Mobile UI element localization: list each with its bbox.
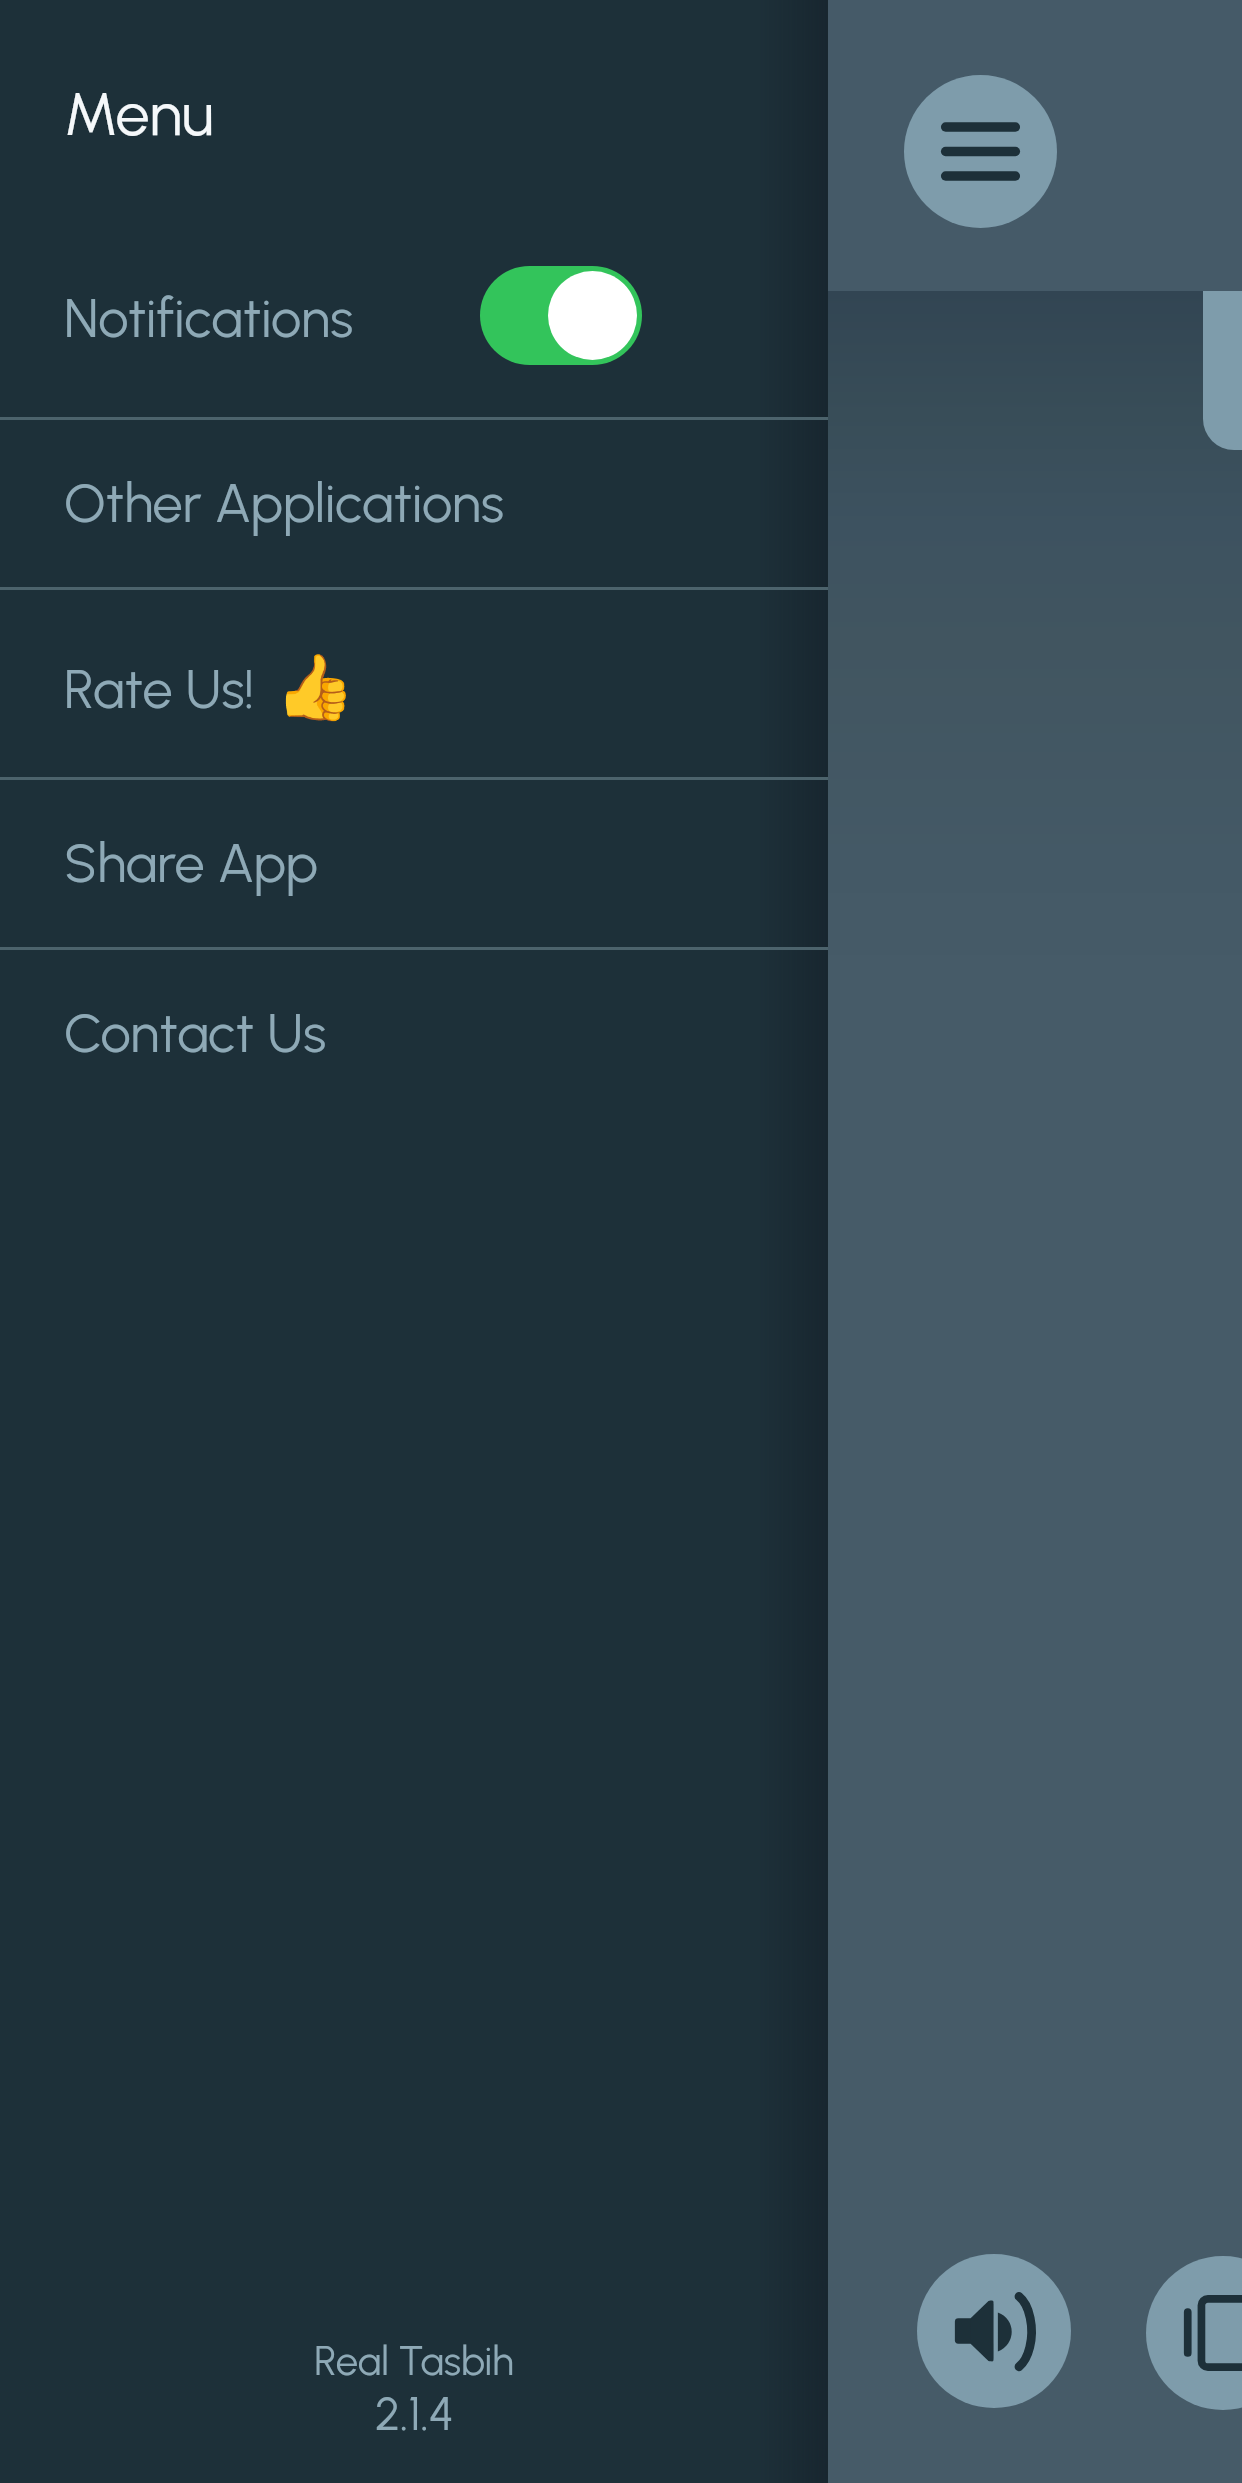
- button[interactable]: Other Applications: [0, 418, 828, 588]
- button[interactable]: Sound: [917, 2254, 1071, 2408]
- staticText: Rate Us!: [64, 657, 255, 722]
- staticText: Notifications: [64, 286, 354, 351]
- button[interactable]: Close navigation drawer: [830, 0, 1242, 2483]
- button[interactable]: Vibration: [1146, 2256, 1242, 2410]
- staticText: Menu: [64, 77, 214, 150]
- staticText: Contact Us: [64, 1001, 327, 1066]
- staticText: 👍: [275, 650, 355, 725]
- button[interactable]: Rate Us!: [0, 588, 828, 778]
- staticText: Real Tasbih: [314, 2337, 514, 2385]
- button[interactable]: Share App: [0, 778, 828, 948]
- button[interactable]: Counter: [1203, 291, 1242, 450]
- button[interactable]: Notifications: [0, 233, 828, 403]
- button[interactable]: Open navigation menu: [904, 75, 1057, 228]
- button[interactable]: Contact Us: [0, 948, 828, 1118]
- button[interactable]: Notifications toggle: [480, 266, 642, 365]
- staticText: 2.1.4: [375, 2386, 454, 2441]
- staticText: Share App: [64, 831, 319, 896]
- staticText: Other Applications: [64, 471, 504, 536]
